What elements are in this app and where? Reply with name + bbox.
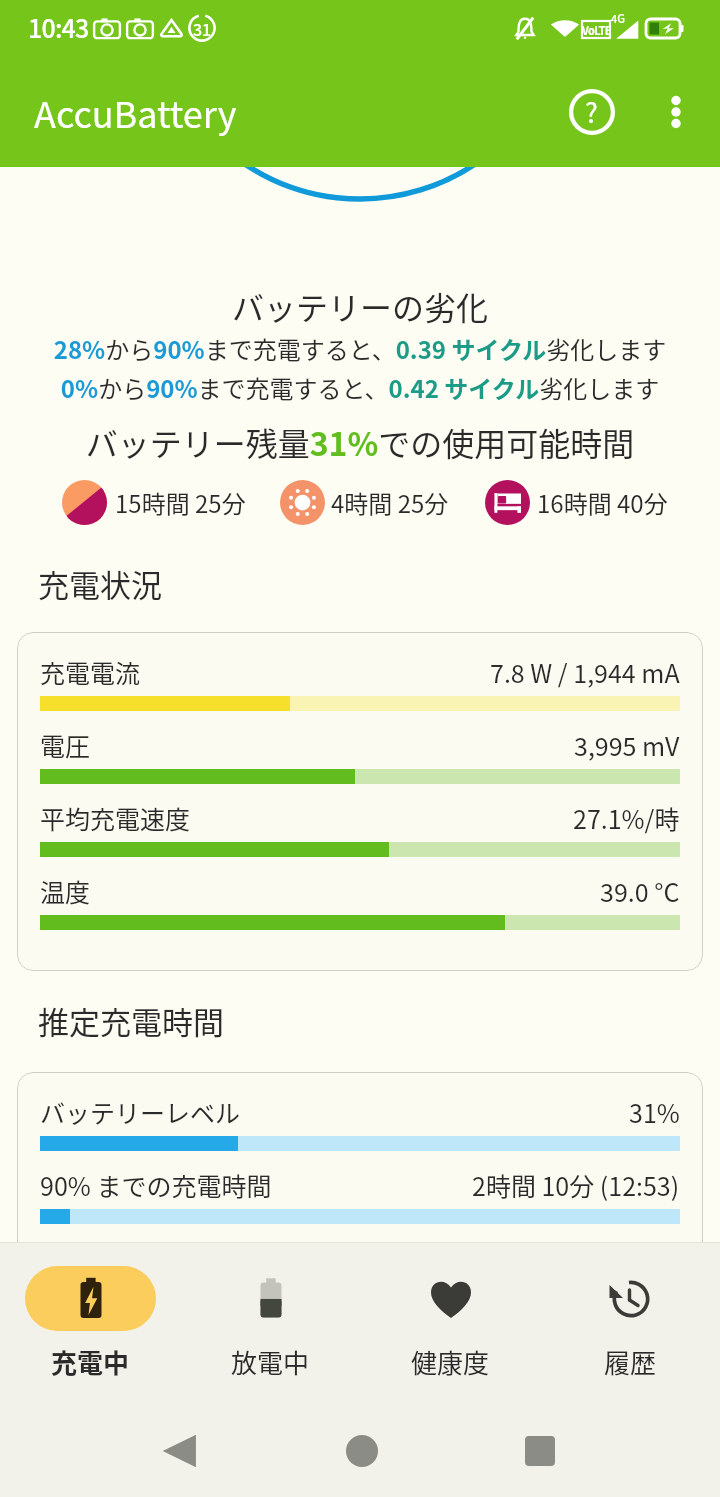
staticText: 電圧 <box>40 727 91 763</box>
staticText: 温度 <box>40 873 91 909</box>
button[interactable]: 最近のアプリ <box>514 1425 566 1477</box>
staticText: 7.8 W / 1,944 mA <box>490 654 680 690</box>
staticText: VoLTE <box>582 22 610 38</box>
staticText: 15時間 25分 <box>115 485 246 520</box>
button[interactable]: 履歴 <box>540 1258 720 1408</box>
staticText: 放電中 <box>231 1343 310 1381</box>
staticText: 27.1%/時 <box>573 800 680 836</box>
staticText: 90% までの充電時間 <box>40 1167 272 1203</box>
staticText: 健康度 <box>411 1343 490 1381</box>
staticText: 39.0 °C <box>600 873 680 909</box>
button[interactable]: ホーム <box>336 1425 388 1477</box>
staticText: 4時間 25分 <box>331 485 449 520</box>
staticText: 充電状況 <box>38 561 162 606</box>
staticText: 4G <box>611 10 625 26</box>
staticText: バッテリーの劣化 <box>0 283 720 329</box>
staticText: 履歴 <box>604 1343 657 1381</box>
button[interactable]: 充電中 <box>0 1258 180 1408</box>
button[interactable]: 健康度 <box>360 1258 540 1408</box>
staticText: 充電中 <box>51 1343 130 1381</box>
staticText: バッテリーレベル <box>40 1094 241 1130</box>
staticText: 0%から90%まで充電すると、0.42 サイクル劣化します <box>0 370 720 405</box>
staticText: 10:43 <box>28 9 89 45</box>
staticText: 3,995 mV <box>574 727 680 763</box>
staticText: 16時間 40分 <box>537 485 668 520</box>
staticText: 31% <box>629 1094 680 1130</box>
staticText: 2時間 10分 (12:53) <box>472 1167 680 1203</box>
button[interactable]: 戻る <box>153 1425 205 1477</box>
button[interactable]: 放電中 <box>180 1258 360 1408</box>
staticText: 平均充電速度 <box>40 800 191 836</box>
staticText: 充電電流 <box>40 654 141 690</box>
staticText: AccuBattery <box>34 86 237 138</box>
staticText: 31 <box>193 17 212 40</box>
staticText: 28%から90%まで充電すると、0.39 サイクル劣化します <box>0 331 720 366</box>
button[interactable]: その他のオプション <box>626 62 720 162</box>
staticText: 推定充電時間 <box>38 998 224 1043</box>
staticText: ? <box>585 92 598 131</box>
button[interactable]: ヘルプ <box>541 61 642 162</box>
staticText: バッテリー残量31%での使用可能時間 <box>0 419 720 465</box>
